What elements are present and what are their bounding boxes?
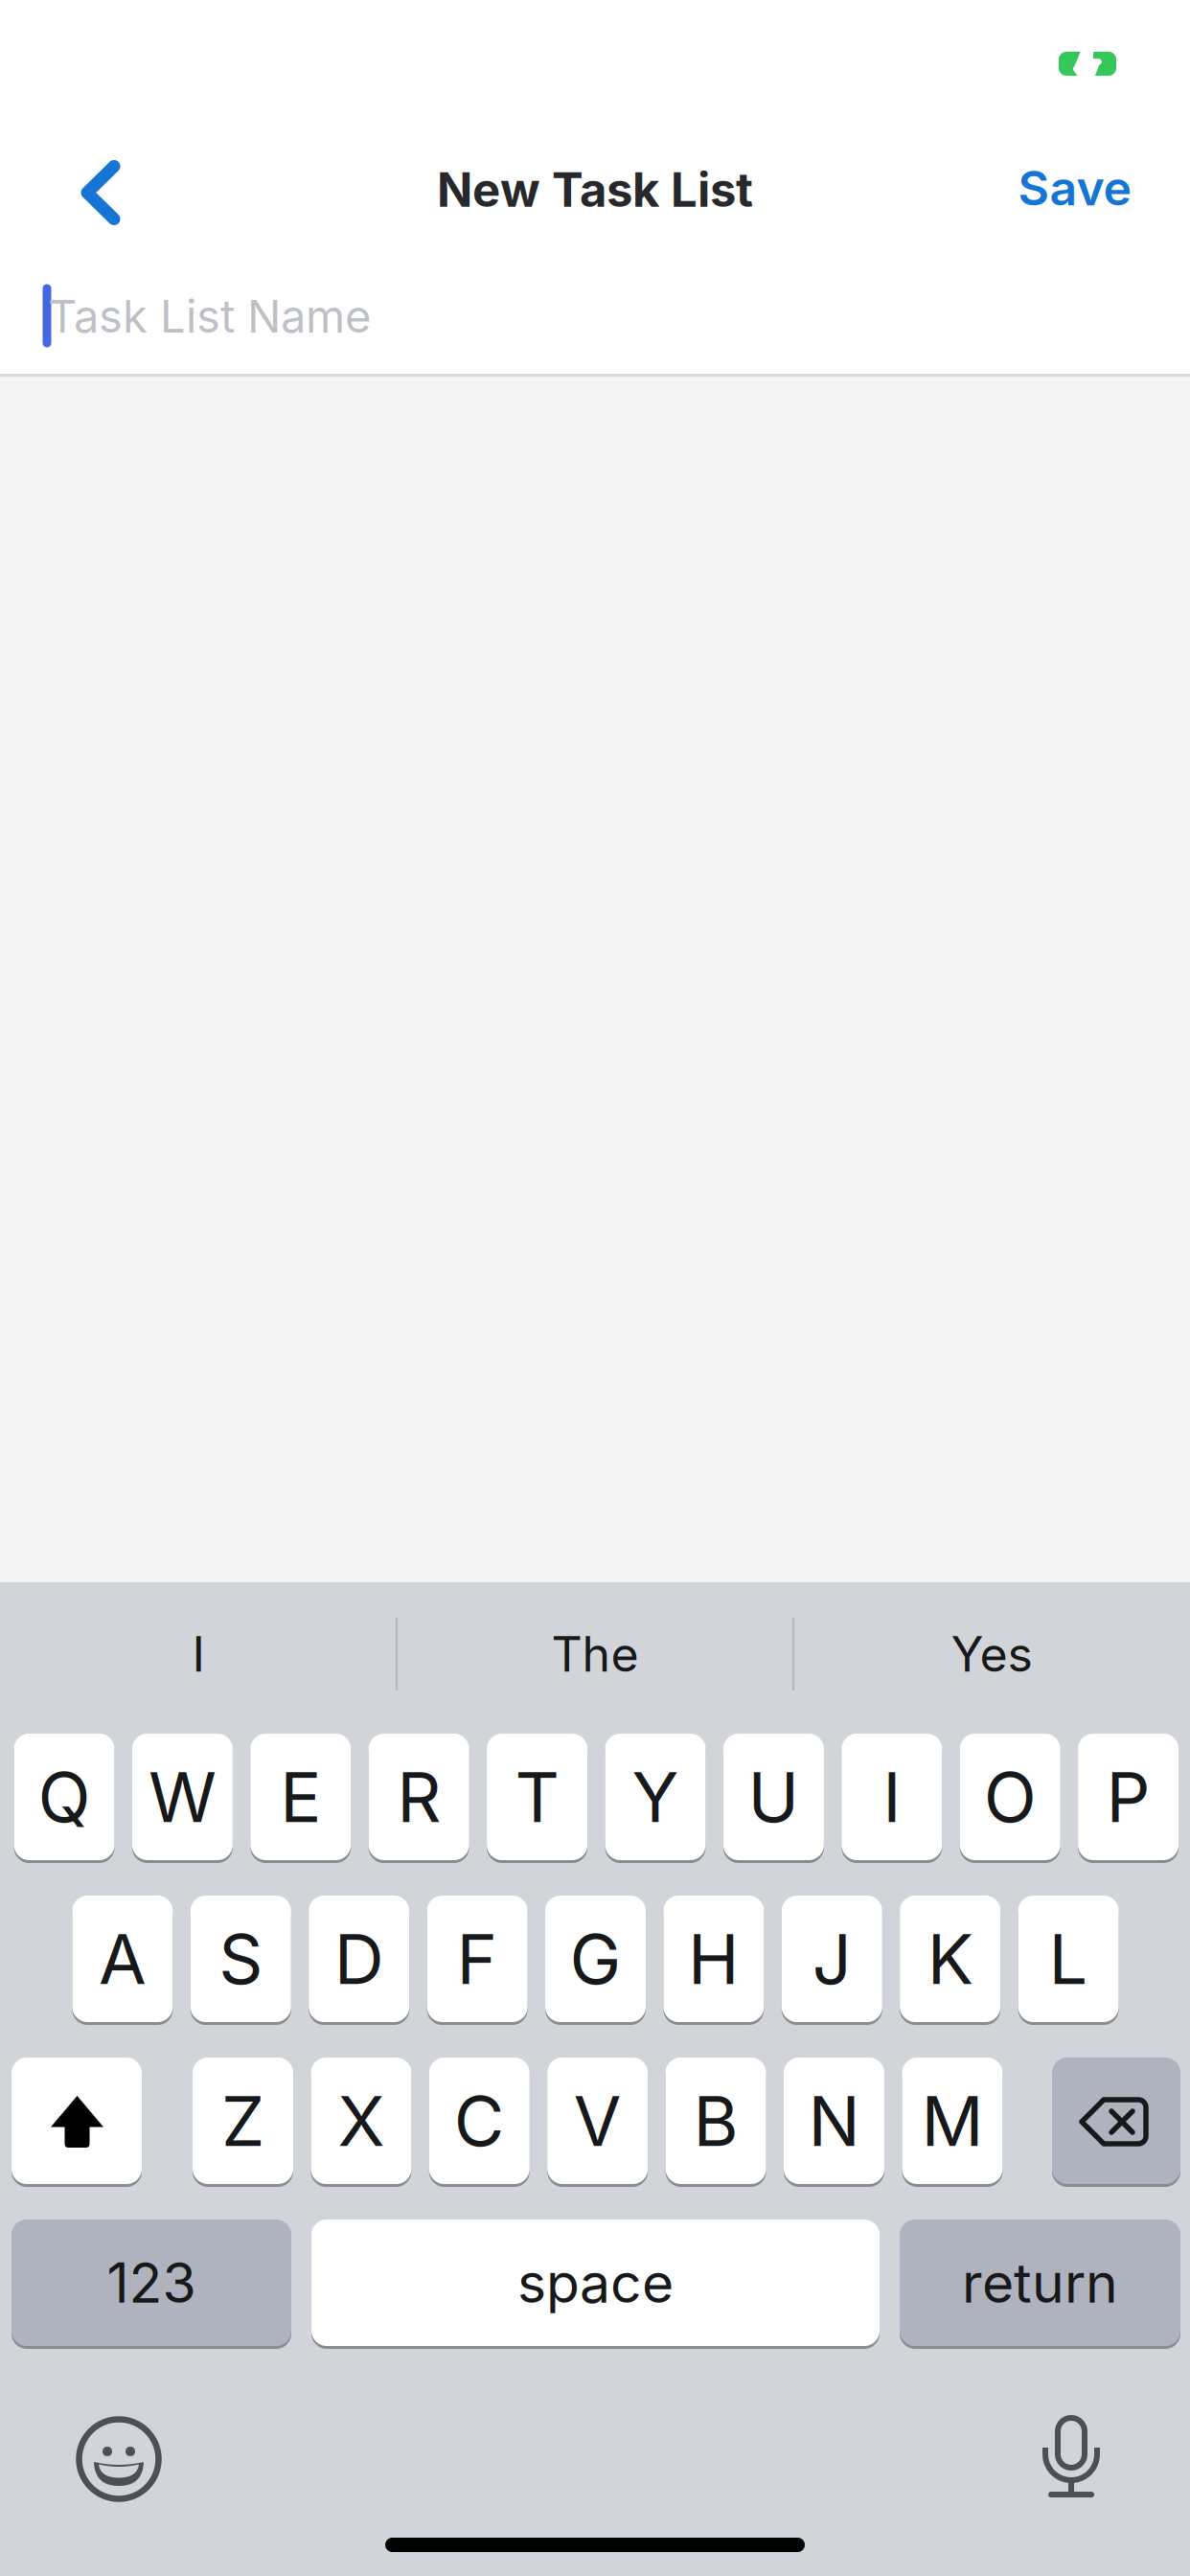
button[interactable]: X — [311, 2058, 411, 2184]
button[interactable]: Delete — [1052, 2058, 1180, 2184]
staticText: J — [812, 1917, 852, 2001]
staticText: I — [192, 1625, 205, 1683]
staticText: K — [927, 1917, 973, 2001]
staticText: F — [457, 1917, 498, 2001]
staticText: D — [334, 1917, 384, 2001]
button[interactable]: W — [132, 1734, 233, 1860]
staticText: V — [574, 2079, 622, 2162]
button[interactable]: I — [16, 1601, 380, 1707]
staticText: P — [1106, 1755, 1150, 1839]
button[interactable]: O — [960, 1734, 1060, 1860]
button[interactable]: D — [309, 1896, 409, 2022]
button[interactable]: M — [902, 2058, 1003, 2184]
staticText: G — [570, 1917, 621, 2001]
staticText: L — [1049, 1917, 1088, 2001]
button[interactable]: Back — [62, 149, 139, 235]
button[interactable]: P — [1078, 1734, 1179, 1860]
button[interactable]: Yes — [810, 1601, 1174, 1707]
staticText: return — [962, 2250, 1118, 2316]
button[interactable]: V — [547, 2058, 648, 2184]
button[interactable]: A — [72, 1896, 173, 2022]
staticText: M — [921, 2079, 983, 2162]
staticText: B — [693, 2079, 738, 2162]
staticText: I — [883, 1755, 901, 1839]
staticText: Task List Name — [48, 289, 371, 344]
button[interactable]: N — [784, 2058, 884, 2184]
button[interactable]: Shift — [11, 2058, 142, 2184]
button[interactable]: The — [413, 1601, 777, 1707]
button[interactable]: Dictate — [1036, 2410, 1105, 2502]
button[interactable]: return — [900, 2219, 1180, 2346]
button[interactable]: L — [1018, 1896, 1119, 2022]
staticText: The — [551, 1625, 639, 1683]
button[interactable]: U — [723, 1734, 824, 1860]
button[interactable]: K — [900, 1896, 1000, 2022]
button[interactable]: B — [666, 2058, 766, 2184]
staticText: H — [688, 1917, 740, 2001]
button[interactable]: R — [369, 1734, 469, 1860]
staticText: O — [984, 1755, 1036, 1839]
button[interactable]: 123 — [11, 2219, 291, 2346]
button[interactable]: Z — [193, 2058, 293, 2184]
staticText: Save — [1018, 159, 1132, 217]
staticText: Z — [221, 2079, 264, 2162]
button[interactable]: I — [842, 1734, 942, 1860]
staticText: R — [397, 1755, 441, 1839]
button[interactable]: H — [663, 1896, 764, 2022]
button[interactable]: J — [782, 1896, 882, 2022]
staticText: U — [748, 1755, 799, 1839]
staticText: W — [148, 1755, 216, 1839]
button[interactable]: space — [311, 2219, 880, 2346]
staticText: S — [219, 1917, 263, 2001]
button[interactable]: E — [250, 1734, 351, 1860]
staticText: Q — [38, 1755, 91, 1839]
button[interactable]: S — [190, 1896, 291, 2022]
button[interactable]: G — [545, 1896, 646, 2022]
button[interactable]: Task List Name — [48, 244, 1190, 388]
button[interactable]: Q — [14, 1734, 114, 1860]
staticText: Yes — [951, 1625, 1032, 1683]
staticText: C — [454, 2079, 505, 2162]
button[interactable]: Emoji — [66, 2406, 172, 2512]
button[interactable]: Save — [1018, 159, 1132, 217]
staticText: A — [99, 1917, 146, 2001]
staticText: space — [517, 2250, 674, 2316]
staticText: 123 — [107, 2250, 196, 2316]
staticText: New Task List — [437, 161, 753, 218]
staticText: N — [808, 2079, 860, 2162]
button[interactable]: T — [487, 1734, 587, 1860]
button[interactable]: C — [429, 2058, 530, 2184]
button[interactable]: Y — [605, 1734, 706, 1860]
button[interactable]: F — [427, 1896, 528, 2022]
staticText: E — [280, 1755, 321, 1839]
staticText: T — [515, 1755, 559, 1839]
staticText: X — [338, 2079, 385, 2162]
staticText: Y — [632, 1755, 679, 1839]
